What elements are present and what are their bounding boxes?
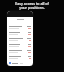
button[interactable]: Position 6 (9, 54, 31, 60)
button[interactable]: Position 5 (9, 48, 31, 54)
button[interactable]: Position 2 (9, 30, 31, 36)
button[interactable]: Position 3 (9, 36, 31, 42)
button[interactable]: Add position (9, 60, 31, 66)
staticText: Easy access to all of your positions. (15, 1, 49, 10)
button[interactable]: Position 1 (9, 24, 31, 30)
button[interactable]: Position 4 (9, 42, 31, 48)
